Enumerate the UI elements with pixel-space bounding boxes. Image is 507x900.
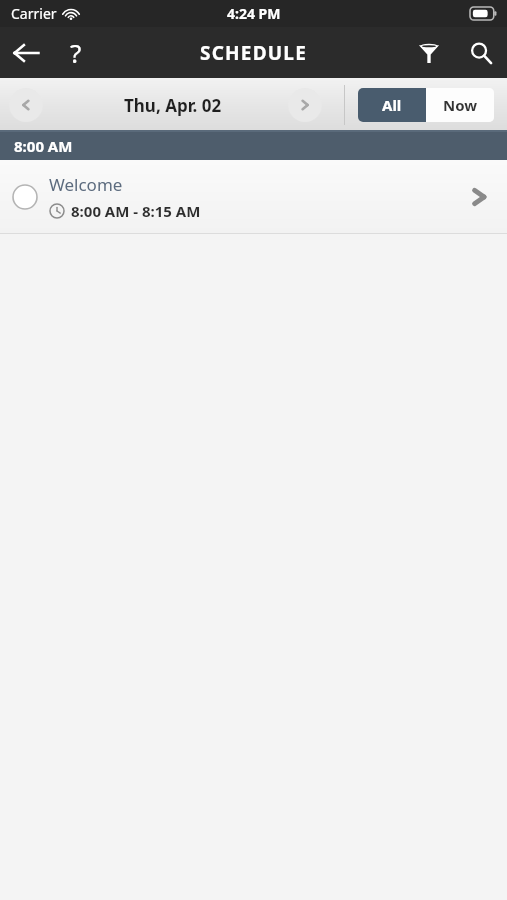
staticText: Welcome	[49, 173, 123, 196]
button[interactable]: Search	[455, 27, 507, 78]
staticText: All	[382, 95, 402, 115]
staticText: SCHEDULE	[200, 40, 307, 66]
button[interactable]: Welcome	[0, 160, 507, 233]
staticText: Now	[443, 95, 478, 115]
staticText: 4:24 PM	[227, 4, 281, 23]
button[interactable]: Filter	[403, 27, 455, 78]
button[interactable]: Now	[426, 88, 494, 122]
staticText: 8:00 AM - 8:15 AM	[71, 201, 201, 221]
button[interactable]: Previous day	[9, 88, 43, 122]
button[interactable]: Help	[52, 27, 100, 78]
button[interactable]: Back	[0, 27, 52, 78]
button[interactable]: All	[358, 88, 426, 122]
staticText: ?	[70, 35, 82, 70]
button[interactable]: Next day	[288, 88, 322, 122]
staticText: Carrier	[11, 4, 57, 23]
staticText: 8:00 AM	[14, 136, 73, 156]
staticText: Thu, Apr. 02	[124, 94, 222, 117]
